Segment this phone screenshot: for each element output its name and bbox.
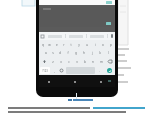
button[interactable]: Enter [103,66,115,75]
staticText: f [67,51,69,55]
button[interactable]: t [67,42,75,48]
staticText: j [92,51,93,55]
staticText: q [42,43,44,47]
staticText: x [60,60,62,64]
button[interactable]: p [107,42,115,48]
button[interactable]: d [56,50,64,56]
staticText: z [52,60,54,64]
button[interactable]: k [96,50,104,56]
button[interactable] [66,32,86,40]
button[interactable]: ?123 [40,67,50,74]
button[interactable]: r [60,42,67,48]
button[interactable]: s [49,50,56,56]
button[interactable]: Shift [39,58,49,65]
staticText: d [59,51,61,55]
button[interactable]: a [42,50,49,56]
staticText: w [48,43,51,47]
button[interactable]: o [99,42,107,48]
staticText: p [110,43,112,47]
staticText: t [70,43,72,47]
button[interactable]: x [57,58,65,65]
button[interactable] [68,99,93,101]
button[interactable]: h [80,50,88,56]
staticText: h [83,51,85,55]
staticText: c [68,60,70,64]
staticText: u [86,43,88,47]
staticText: ?123 [42,69,48,73]
button[interactable]: y [75,42,83,48]
button[interactable]: f [64,50,72,56]
button[interactable]: z [49,58,57,65]
button[interactable]: m [97,58,105,65]
button[interactable]: Backspace [105,58,115,65]
staticText: m [100,60,103,64]
staticText: i [95,43,96,47]
staticText: o [102,43,104,47]
staticText: s [52,51,54,55]
staticText: . [99,69,100,73]
button[interactable] [87,32,107,40]
staticText: y [78,43,80,47]
button[interactable]: v [73,58,81,65]
button[interactable]: Back [46,79,51,84]
staticText: e [56,43,58,47]
button[interactable]: j [88,50,96,56]
button[interactable]: c [65,58,73,65]
button[interactable]: l [104,50,112,56]
staticText: l [108,51,109,55]
button[interactable]: Voice input [108,32,115,40]
button[interactable]: w [46,42,53,48]
staticText: g [75,51,77,55]
button[interactable]: i [91,42,99,48]
button[interactable]: b [81,58,89,65]
staticText: v [76,60,78,64]
button[interactable]: , [51,67,58,74]
button[interactable]: u [83,42,91,48]
staticText: a [45,51,47,55]
staticText: k [99,51,101,55]
staticText: r [63,43,65,47]
button[interactable]: e [53,42,60,48]
staticText: , [54,69,55,73]
staticText: b [84,60,86,64]
button[interactable]: Recents [98,79,103,84]
button[interactable]: q [39,42,46,48]
button[interactable]: Emoji [58,67,65,74]
button[interactable]: g [72,50,80,56]
staticText: n [92,60,94,64]
button[interactable]: Home [72,79,77,84]
button[interactable] [45,32,65,40]
button[interactable]: n [89,58,97,65]
button[interactable]: Clipboard [39,32,45,40]
